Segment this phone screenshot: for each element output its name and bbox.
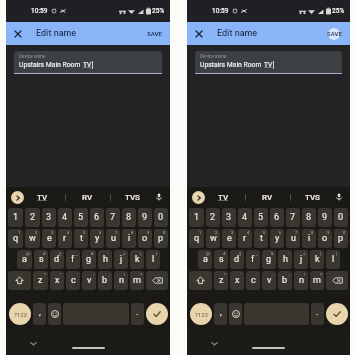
button[interactable]: 7 [286, 229, 300, 248]
button[interactable]: 6 [90, 229, 104, 248]
button[interactable]: 0 [334, 208, 348, 227]
button[interactable]: 2 [206, 229, 220, 248]
button[interactable]: 8 [122, 229, 136, 248]
button[interactable]: 7 [286, 208, 300, 227]
button[interactable]: 7 [106, 208, 120, 227]
button[interactable]: Backspace [326, 271, 348, 290]
button[interactable]: @ [17, 250, 32, 269]
button[interactable]: - [278, 250, 292, 269]
button[interactable]: 7 [106, 229, 120, 248]
button[interactable]: ; [98, 271, 112, 290]
button[interactable]: @ [198, 250, 212, 269]
button[interactable]: , [33, 303, 46, 325]
button[interactable]: 4 [58, 208, 72, 227]
button[interactable]: ? [130, 271, 144, 290]
button[interactable]: SAVE [142, 25, 167, 42]
button[interactable]: More suggestions [192, 191, 205, 204]
button[interactable]: 3 [42, 208, 56, 227]
button[interactable]: + [294, 250, 308, 269]
button[interactable]: RV [245, 187, 290, 207]
button[interactable]: TVS [110, 187, 155, 207]
button[interactable]: 6 [90, 208, 104, 227]
button[interactable]: Enter [326, 303, 348, 325]
button[interactable]: 2 [25, 208, 40, 227]
button[interactable]: * [33, 271, 48, 290]
button[interactable]: " [50, 271, 64, 290]
button[interactable]: 3 [42, 229, 56, 248]
button[interactable]: ?123 [190, 303, 212, 325]
button[interactable]: $ [50, 250, 64, 269]
button[interactable]: 3 [222, 229, 236, 248]
button[interactable]: Backspace [146, 271, 168, 290]
button[interactable]: 1 [8, 208, 23, 227]
button[interactable]: ( [130, 250, 144, 269]
button[interactable]: # [214, 250, 228, 269]
button[interactable]: # [34, 250, 48, 269]
button[interactable]: 9 [318, 208, 332, 227]
button[interactable]: ?123 [9, 303, 31, 325]
button[interactable]: 0 [154, 229, 168, 248]
button[interactable]: 1 [8, 229, 23, 248]
button[interactable]: ? [310, 271, 324, 290]
button[interactable]: 5 [74, 229, 88, 248]
button[interactable]: 5 [254, 229, 268, 248]
button[interactable]: Voice input [333, 191, 345, 203]
button[interactable]: 6 [270, 208, 284, 227]
button[interactable]: 4 [238, 229, 252, 248]
button[interactable]: 0 [154, 208, 168, 227]
button[interactable]: Close [191, 26, 207, 42]
button[interactable]: _ [66, 250, 80, 269]
button[interactable]: Hide keyboard [209, 338, 219, 348]
button[interactable]: 3 [222, 208, 236, 227]
button[interactable]: & [262, 250, 276, 269]
button[interactable]: 8 [302, 229, 316, 248]
button[interactable]: Hide keyboard [28, 338, 38, 348]
button[interactable]: - [98, 250, 112, 269]
button[interactable]: 9 [318, 229, 332, 248]
button[interactable]: ' [66, 271, 80, 290]
button[interactable]: Shift [189, 271, 212, 290]
button[interactable]: Device name [14, 51, 162, 73]
button[interactable]: Emoji [48, 303, 61, 325]
button[interactable]: 0 [334, 229, 348, 248]
button[interactable]: ! [114, 271, 128, 290]
button[interactable]: More suggestions [11, 191, 24, 204]
button[interactable]: 9 [138, 229, 152, 248]
button[interactable]: : [262, 271, 276, 290]
button[interactable]: ) [146, 250, 160, 269]
button[interactable]: 9 [138, 208, 152, 227]
button[interactable]: & [82, 250, 96, 269]
button[interactable]: ( [310, 250, 324, 269]
button[interactable]: RV [65, 187, 110, 207]
button[interactable]: TVS [290, 187, 335, 207]
button[interactable]: 8 [122, 208, 136, 227]
button[interactable]: Emoji [229, 303, 242, 325]
button[interactable]: 2 [25, 229, 40, 248]
button[interactable]: _ [246, 250, 260, 269]
button[interactable]: 5 [74, 208, 88, 227]
button[interactable]: Voice input [153, 191, 165, 203]
button[interactable]: Shift [8, 271, 31, 290]
button[interactable]: 4 [238, 208, 252, 227]
button[interactable]: Close [10, 26, 26, 42]
button[interactable]: ' [246, 271, 260, 290]
button[interactable]: TV [20, 187, 65, 207]
button[interactable]: Enter [146, 303, 168, 325]
button[interactable]: * [214, 271, 228, 290]
button[interactable]: 6 [270, 229, 284, 248]
button[interactable]: ; [278, 271, 292, 290]
button[interactable]: Device name [195, 51, 342, 73]
button[interactable]: 2 [206, 208, 220, 227]
button[interactable]: 4 [58, 229, 72, 248]
button[interactable]: + [114, 250, 128, 269]
button[interactable]: TV [201, 187, 245, 207]
button[interactable]: ) [326, 250, 340, 269]
button[interactable]: 8 [302, 208, 316, 227]
button[interactable]: 1 [189, 229, 204, 248]
button[interactable]: , [214, 303, 227, 325]
button[interactable]: $ [230, 250, 244, 269]
button[interactable]: . [311, 303, 324, 325]
button[interactable]: . [131, 303, 144, 325]
